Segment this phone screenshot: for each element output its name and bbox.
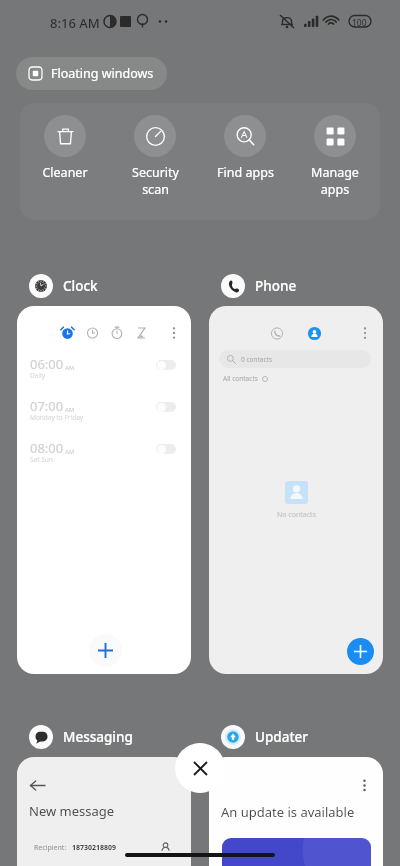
button[interactable]: Toggle alarm — [156, 402, 176, 412]
button[interactable]: Add contact — [347, 638, 374, 665]
button[interactable]: Messaging — [29, 723, 133, 751]
staticText: 06:00 — [30, 355, 64, 373]
button[interactable]: Floating windows — [16, 57, 167, 90]
button[interactable]: New message — [17, 757, 191, 866]
staticText: Clock — [63, 277, 98, 295]
button[interactable]: 06:00 — [17, 354, 191, 396]
button[interactable]: Toggle alarm — [156, 444, 176, 454]
button[interactable]: 0 contacts — [219, 350, 371, 368]
staticText: Security scan — [132, 164, 179, 197]
staticText: 18730218809 — [72, 843, 117, 853]
button[interactable]: 06:00 — [17, 306, 191, 674]
button[interactable]: Find apps — [200, 103, 290, 181]
staticText: All contacts — [223, 374, 258, 383]
staticText: New message — [29, 802, 115, 820]
button[interactable]: Clear all — [175, 743, 225, 793]
button[interactable]: Add alarm — [89, 634, 122, 667]
button[interactable]: 0 contacts — [209, 306, 383, 674]
button[interactable]: 07:00 — [17, 396, 191, 438]
button[interactable]: Toggle alarm — [156, 360, 176, 370]
staticText: Find apps — [217, 164, 274, 181]
staticText: 0 contacts — [241, 355, 273, 364]
button[interactable]: Cleaner — [20, 103, 110, 181]
staticText: AM — [65, 406, 75, 414]
button[interactable]: Manage apps — [290, 103, 380, 197]
staticText: 07:00 — [30, 397, 64, 415]
staticText: Phone — [255, 277, 297, 295]
button[interactable]: An update is available — [209, 757, 383, 866]
button[interactable]: Security scan — [110, 103, 200, 197]
staticText: Monday to Friday — [30, 413, 84, 422]
staticText: Sat Sun — [30, 455, 53, 464]
staticText: AM — [65, 448, 75, 456]
staticText: Manage apps — [311, 164, 359, 197]
staticText: An update is available — [221, 803, 355, 821]
staticText: 8:16 AM — [50, 14, 100, 32]
staticText: 08:00 — [30, 439, 64, 457]
button[interactable]: Updater — [221, 723, 309, 751]
staticText: AM — [65, 364, 75, 372]
staticText: Updater — [255, 728, 309, 746]
staticText: Floating windows — [51, 65, 154, 82]
staticText: Daily — [30, 371, 46, 380]
button[interactable]: Phone — [221, 272, 297, 300]
button[interactable]: Clock — [29, 272, 98, 300]
button[interactable]: 08:00 — [17, 438, 191, 480]
staticText: Messaging — [63, 728, 133, 746]
staticText: No contacts — [277, 510, 316, 520]
staticText: Cleaner — [42, 164, 88, 181]
staticText: Recipient: — [34, 843, 67, 853]
staticText: 100 — [352, 17, 367, 29]
